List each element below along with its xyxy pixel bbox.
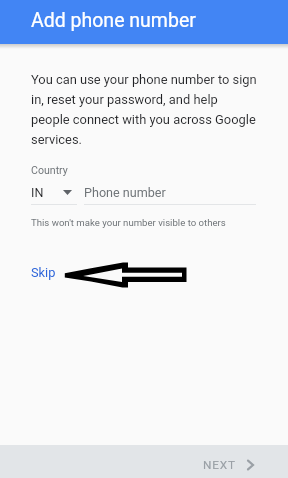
staticText: Country [31, 164, 68, 176]
button[interactable]: Select country [31, 185, 77, 205]
staticText: IN [31, 185, 44, 200]
staticText: Add phone number [31, 9, 196, 32]
button[interactable]: Phone number [84, 185, 256, 205]
button[interactable]: Skip [23, 259, 64, 286]
staticText: Phone number [84, 185, 166, 200]
staticText: You can use your phone number to sign in… [31, 72, 259, 147]
staticText: NEXT [203, 458, 236, 472]
staticText: Skip [31, 265, 56, 280]
button[interactable]: NEXT [187, 452, 288, 478]
button[interactable]: Add phone number [0, 0, 288, 44]
staticText: This won't make your number visible to o… [31, 217, 226, 228]
